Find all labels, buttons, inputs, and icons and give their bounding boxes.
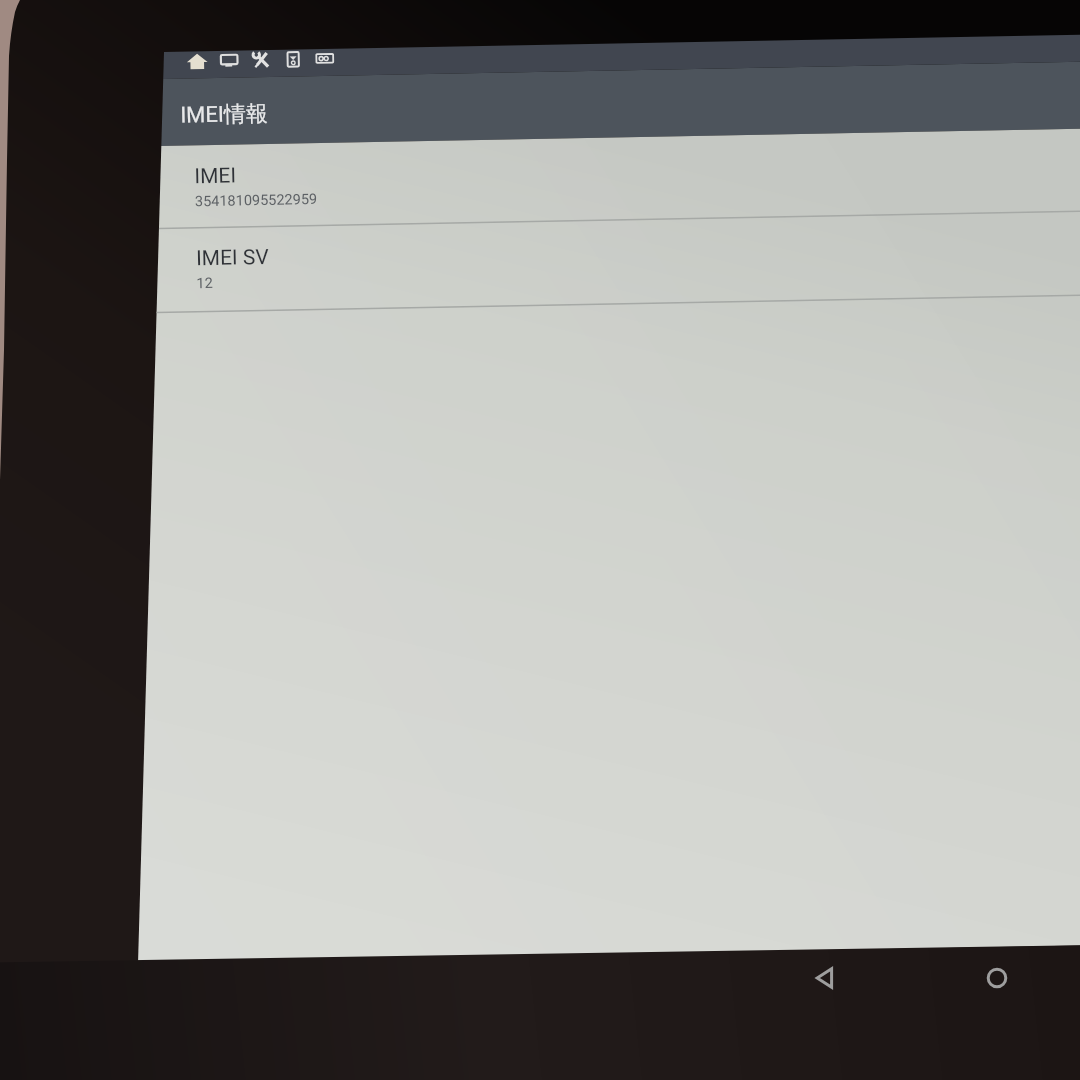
- staticText: 12: [196, 275, 214, 292]
- button[interactable]: Card: [313, 46, 337, 70]
- staticText: IMEI: [194, 163, 237, 189]
- button[interactable]: IMEI情報: [180, 79, 481, 146]
- button[interactable]: Device: [281, 47, 305, 71]
- staticText: IMEI SV: [196, 245, 269, 271]
- staticText: IMEI情報: [180, 100, 268, 130]
- button[interactable]: Display: [217, 48, 241, 72]
- button[interactable]: Back: [806, 958, 846, 998]
- button[interactable]: IMEI: [194, 147, 1075, 210]
- button[interactable]: Tools: [249, 48, 273, 71]
- staticText: 354181095522959: [195, 191, 318, 210]
- button[interactable]: IMEI SV: [196, 229, 1076, 292]
- button[interactable]: Home: [185, 49, 209, 72]
- button[interactable]: Home: [977, 958, 1017, 998]
